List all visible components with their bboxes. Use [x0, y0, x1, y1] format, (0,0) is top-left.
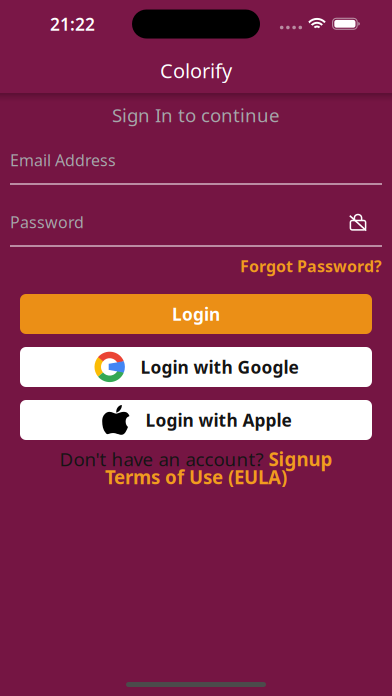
button[interactable]: Terms of Use (EULA)	[0, 468, 392, 486]
button[interactable]: Login	[0, 294, 392, 334]
staticText: Signup	[268, 447, 332, 471]
button[interactable]: Login with Apple	[0, 400, 392, 440]
staticText: Login	[172, 302, 220, 325]
button[interactable]: Login with Google	[0, 347, 392, 387]
staticText: Login with Apple	[145, 408, 291, 431]
button[interactable]: Forgot Password?	[0, 247, 392, 277]
button[interactable]: Signup	[268, 447, 332, 471]
button[interactable]: Show password	[349, 212, 382, 231]
staticText: Colorify	[160, 57, 232, 84]
staticText: Don't have an account?	[59, 447, 263, 471]
staticText: Forgot Password?	[240, 255, 382, 277]
staticText: Terms of Use (EULA)	[105, 465, 287, 489]
staticText: 21:22	[50, 12, 95, 35]
staticText: Email Address	[10, 149, 116, 171]
staticText: Sign In to continue	[112, 103, 280, 127]
staticText: Login with Google	[140, 355, 298, 378]
staticText: Password	[10, 211, 84, 233]
